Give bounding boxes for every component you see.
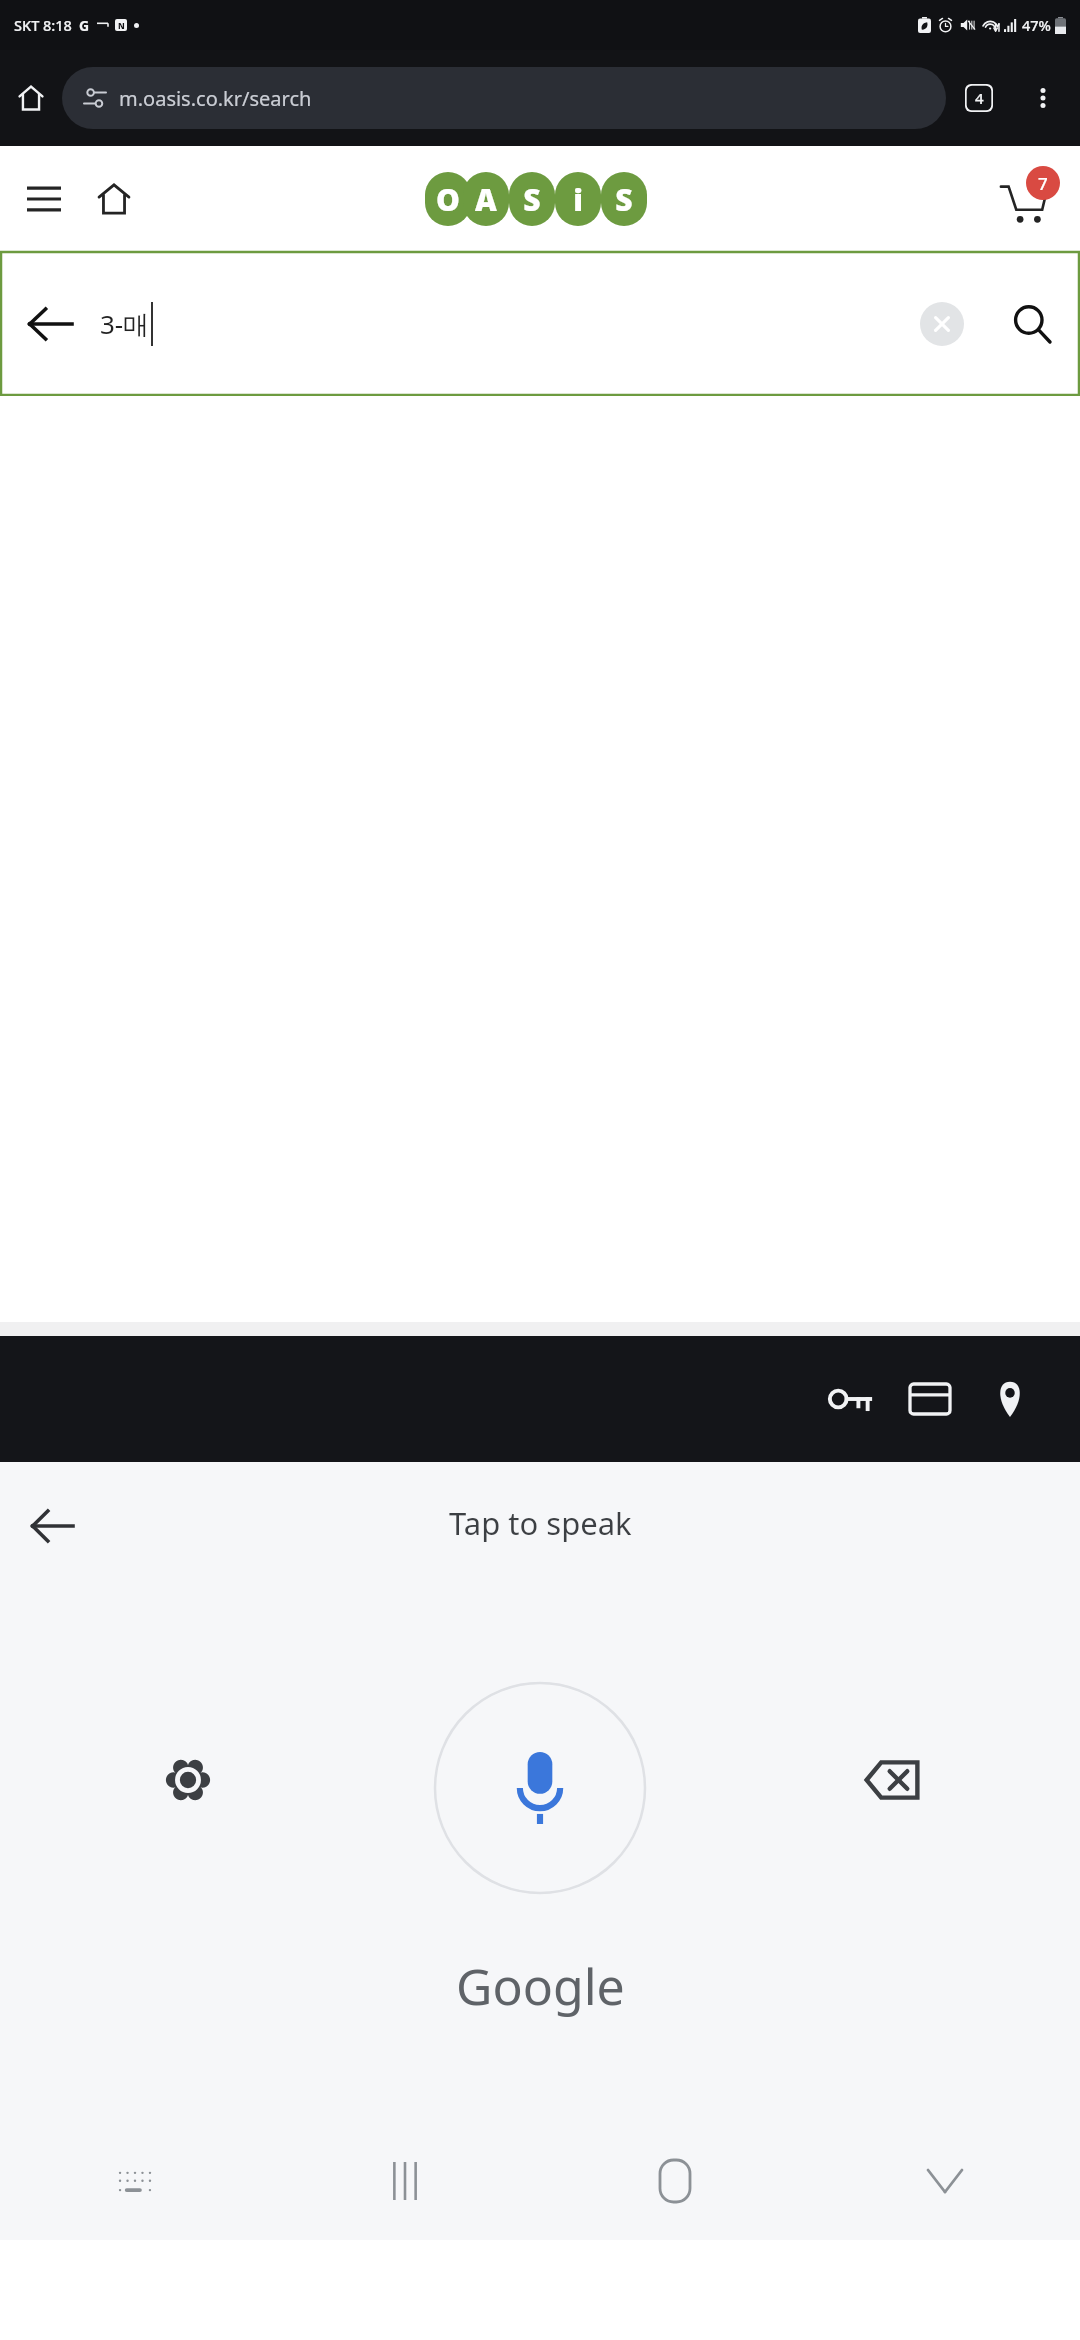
button[interactable]: More options xyxy=(1012,67,1074,129)
staticText: m.oasis.co.kr/search xyxy=(119,85,312,112)
button[interactable]: Backspace xyxy=(846,1734,938,1826)
button[interactable]: m.oasis.co.kr/search xyxy=(62,67,946,129)
button[interactable]: Tap to speak xyxy=(434,1682,646,1894)
staticText: Tap to speak xyxy=(449,1502,632,1544)
button[interactable]: Cart, 7 items xyxy=(984,160,1062,238)
staticText: 4 xyxy=(975,88,984,108)
button[interactable]: Recent apps xyxy=(270,2122,540,2240)
button[interactable]: Home xyxy=(0,67,62,129)
staticText: S xyxy=(523,179,541,220)
staticText: O xyxy=(436,179,460,220)
button[interactable]: Addresses xyxy=(970,1359,1050,1439)
button[interactable]: Hide keyboard xyxy=(810,2122,1080,2240)
button[interactable]: Passwords xyxy=(810,1359,890,1439)
staticText: G xyxy=(79,16,90,35)
staticText: 7 xyxy=(1038,172,1048,195)
button[interactable]: Menu xyxy=(14,169,74,229)
button[interactable]: Clear query xyxy=(900,282,984,366)
button[interactable]: Back xyxy=(0,269,100,379)
button[interactable]: Shop home xyxy=(84,169,144,229)
staticText: N xyxy=(118,20,125,31)
button[interactable]: Payment methods xyxy=(890,1359,970,1439)
staticText: 3-매 xyxy=(100,306,150,342)
staticText: A xyxy=(475,179,497,220)
button[interactable]: Change keyboard xyxy=(0,2122,270,2240)
staticText: SKT 8:18 xyxy=(14,15,72,35)
staticText: i xyxy=(573,179,583,220)
staticText: S xyxy=(615,179,633,220)
button[interactable]: Back xyxy=(10,1484,94,1568)
button[interactable]: O xyxy=(425,172,655,226)
button[interactable]: Voice settings xyxy=(142,1734,234,1826)
button[interactable]: Home xyxy=(540,2122,810,2240)
button[interactable]: Search xyxy=(984,269,1080,379)
staticText: 47% xyxy=(1022,15,1051,35)
staticText: Google xyxy=(456,1952,625,2020)
button[interactable]: Tabs, 4 open xyxy=(946,65,1012,131)
